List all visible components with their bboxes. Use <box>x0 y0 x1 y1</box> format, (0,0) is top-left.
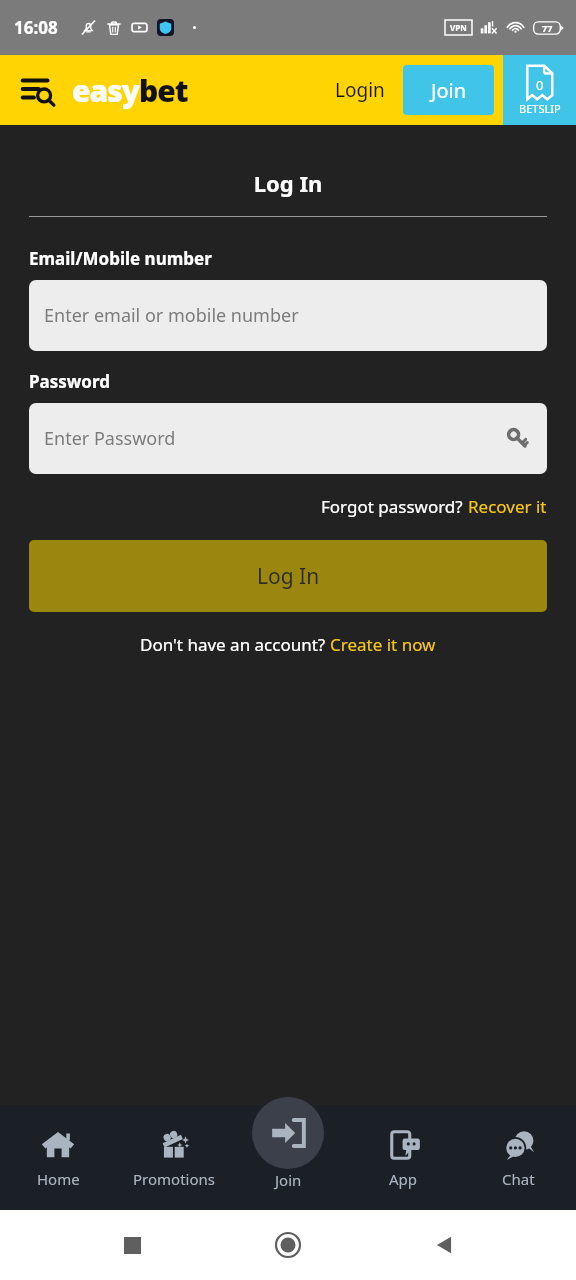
staticText: easybet <box>72 70 188 111</box>
button[interactable]: Join <box>403 65 494 115</box>
button[interactable]: Chat <box>461 1105 576 1210</box>
button[interactable]: 0 <box>503 55 576 125</box>
other: Show password <box>505 426 531 452</box>
staticText: Email/Mobile number <box>29 247 212 270</box>
button[interactable]: Join <box>231 1105 346 1210</box>
button[interactable]: Recents <box>108 1221 156 1269</box>
staticText: App <box>389 1169 418 1189</box>
button[interactable]: Login <box>325 67 395 113</box>
staticText: Chat <box>502 1169 535 1189</box>
staticText: BETSLIP <box>519 101 561 116</box>
button[interactable]: Create it now <box>330 633 436 656</box>
staticText: 77 <box>542 22 553 34</box>
staticText: 0 <box>536 76 544 94</box>
staticText: Don't have an account? <box>140 633 330 656</box>
button[interactable]: Home <box>264 1221 312 1269</box>
staticText: Home <box>37 1169 80 1189</box>
staticText: 16:08 <box>14 16 58 39</box>
button[interactable]: Join <box>252 1097 324 1169</box>
button[interactable]: Back <box>420 1221 468 1269</box>
staticText: Recover it <box>468 495 547 518</box>
staticText: Enter Password <box>44 426 176 451</box>
button[interactable]: Enter Password <box>29 403 547 474</box>
staticText: Create it now <box>330 633 436 656</box>
staticText: Password <box>29 370 110 393</box>
button[interactable]: Enter email or mobile number <box>29 280 547 351</box>
staticText: Log In <box>0 168 576 198</box>
staticText: Forgot password? <box>321 495 468 518</box>
button[interactable]: Home <box>0 1105 116 1210</box>
staticText: Join <box>275 1170 302 1190</box>
button[interactable]: Recover it <box>468 495 547 518</box>
button[interactable]: Promotions <box>116 1105 231 1210</box>
staticText: Login <box>335 77 385 103</box>
staticText: Promotions <box>133 1169 215 1189</box>
staticText: Log In <box>257 562 320 591</box>
staticText: VPN <box>450 22 467 33</box>
button[interactable]: App <box>346 1105 461 1210</box>
staticText: Join <box>431 77 467 104</box>
button[interactable]: Menu and search <box>16 68 60 112</box>
button[interactable]: Log In <box>29 540 547 612</box>
staticText: Enter email or mobile number <box>44 303 299 328</box>
